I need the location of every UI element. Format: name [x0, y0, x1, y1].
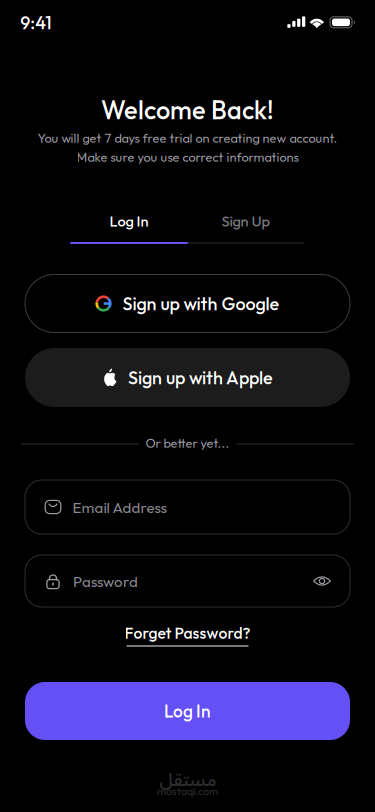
- staticText: mostaql.com: [157, 784, 218, 798]
- button[interactable]: Forget Password?: [126, 620, 248, 650]
- staticText: Make sure you use correct informations: [76, 149, 298, 165]
- staticText: Or better yet...: [145, 435, 229, 451]
- staticText: 9:41: [20, 11, 51, 34]
- button[interactable]: Sign up with Apple: [25, 348, 350, 407]
- button[interactable]: Sign up with Google: [25, 274, 350, 332]
- staticText: مستقل: [159, 760, 216, 800]
- staticText: Password: [73, 572, 138, 591]
- staticText: Sign up with Apple: [128, 366, 273, 389]
- button[interactable]: Show password: [305, 564, 339, 598]
- staticText: Sign up with Google: [123, 292, 280, 315]
- button[interactable]: Sign Up: [188, 189, 304, 243]
- staticText: Log In: [164, 700, 211, 722]
- button[interactable]: Log In: [25, 682, 350, 740]
- staticText: Welcome Back!: [101, 94, 274, 126]
- staticText: Log In: [109, 212, 148, 230]
- staticText: Email Address: [72, 498, 166, 517]
- staticText: Sign Up: [221, 212, 270, 230]
- button[interactable]: Log In: [70, 189, 188, 243]
- staticText: Forget Password?: [124, 623, 250, 643]
- staticText: You will get 7 days free trial on creati…: [37, 130, 337, 146]
